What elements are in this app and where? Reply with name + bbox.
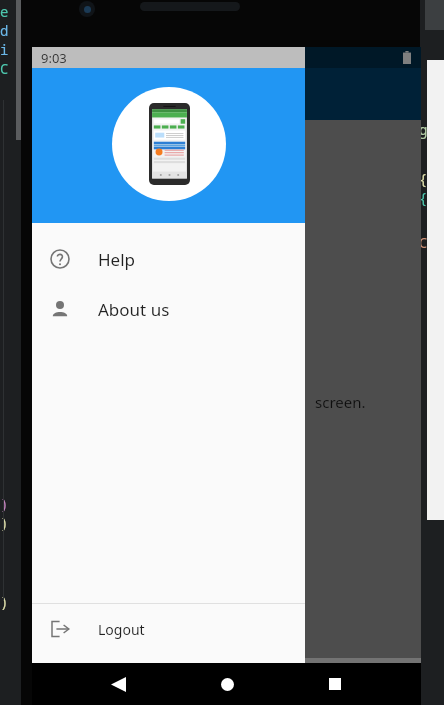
button[interactable]: Home — [205, 663, 249, 705]
other: About us — [50, 299, 70, 319]
button[interactable]: Logout — [32, 604, 305, 654]
staticText: C — [419, 233, 428, 252]
button[interactable]: Recent apps — [313, 663, 357, 705]
staticText: ) — [0, 592, 9, 611]
staticText: e — [0, 2, 9, 21]
staticText: d — [0, 21, 9, 40]
staticText: ) — [0, 513, 9, 532]
button[interactable]: About us — [32, 284, 305, 334]
other: Help — [50, 249, 70, 269]
staticText: C — [0, 59, 9, 78]
staticText: screen. — [315, 392, 366, 412]
other: Logout — [50, 619, 70, 639]
staticText: { — [419, 169, 428, 188]
staticText: { — [419, 188, 428, 207]
button[interactable]: Back — [96, 663, 140, 705]
staticText: Help — [98, 248, 136, 271]
staticText: 9:03 — [41, 49, 67, 67]
staticText: Logout — [98, 620, 145, 639]
staticText: i — [0, 40, 9, 59]
staticText: g — [419, 120, 428, 139]
button[interactable]: Help — [32, 234, 305, 284]
staticText: ) — [0, 494, 9, 513]
staticText: About us — [98, 298, 170, 321]
